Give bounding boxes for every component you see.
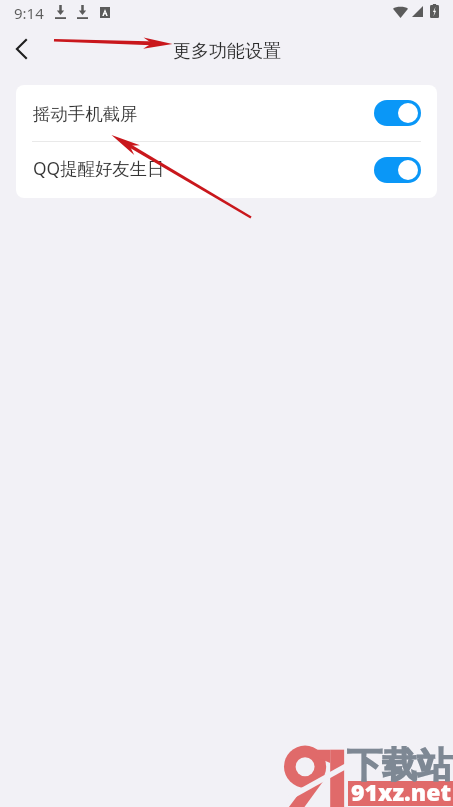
button[interactable]: Toggle — [374, 157, 421, 183]
staticText: 下载站 — [347, 743, 452, 787]
staticText: 更多功能设置 — [173, 40, 281, 63]
staticText: 摇动手机截屏 — [33, 103, 138, 125]
staticText: QQ提醒好友生日 — [33, 156, 165, 180]
button[interactable]: Toggle — [374, 100, 421, 126]
staticText: 9:14 — [14, 3, 44, 23]
staticText: 91xz.net — [351, 776, 451, 807]
button[interactable]: Back — [0, 30, 44, 74]
button[interactable]: QQ提醒好友生日 — [16, 142, 437, 198]
button[interactable]: 摇动手机截屏 — [16, 85, 437, 141]
